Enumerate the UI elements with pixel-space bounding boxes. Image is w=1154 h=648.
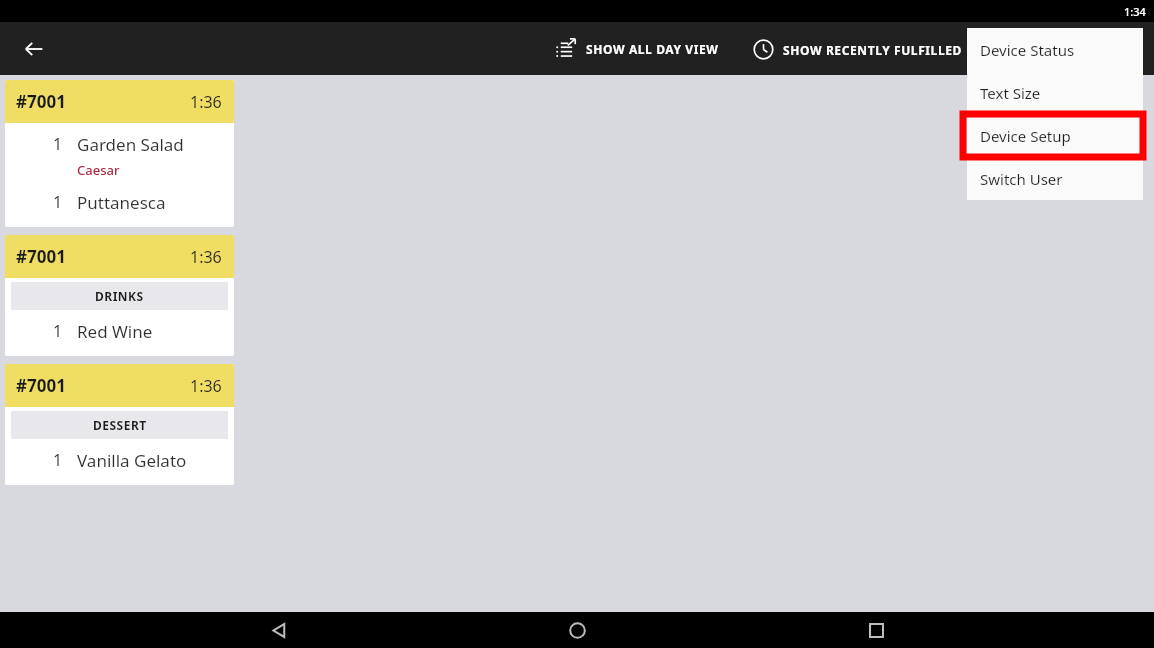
staticText: 1:34 <box>1124 4 1146 19</box>
button[interactable]: #7001 <box>5 364 234 485</box>
staticText: Garden Salad <box>77 133 184 156</box>
staticText: Device Status <box>980 40 1075 60</box>
staticText: Text Size <box>980 83 1041 103</box>
button[interactable]: Home <box>557 612 597 648</box>
staticText: #7001 <box>16 90 66 113</box>
staticText: 1:36 <box>190 91 222 113</box>
button[interactable]: #7001 <box>5 235 234 356</box>
button[interactable]: Device Setup <box>967 114 1143 157</box>
staticText: SHOW RECENTLY FULFILLED <box>783 42 962 58</box>
staticText: Device Setup <box>980 126 1071 146</box>
staticText: 1 <box>53 449 63 471</box>
staticText: DRINKS <box>95 288 144 304</box>
staticText: 1 <box>53 133 63 155</box>
staticText: Vanilla Gelato <box>77 449 187 472</box>
staticText: Puttanesca <box>77 191 166 214</box>
button[interactable]: Device Status <box>967 28 1143 71</box>
staticText: 1 <box>53 191 63 213</box>
button[interactable]: SHOW ALL DAY VIEW <box>549 32 725 66</box>
button[interactable]: SHOW RECENTLY FULFILLED <box>747 33 968 66</box>
staticText: SHOW ALL DAY VIEW <box>586 41 719 57</box>
staticText: Red Wine <box>77 320 153 343</box>
staticText: Switch User <box>980 169 1063 189</box>
staticText: Caesar <box>77 161 120 179</box>
button[interactable]: #7001 <box>5 80 234 227</box>
button[interactable]: Back <box>14 29 54 69</box>
button[interactable]: Text Size <box>967 71 1143 114</box>
staticText: 1:36 <box>190 246 222 268</box>
staticText: #7001 <box>16 374 66 397</box>
staticText: #7001 <box>16 245 66 268</box>
staticText: 1:36 <box>190 375 222 397</box>
button[interactable]: Recents <box>856 612 896 648</box>
staticText: 1 <box>53 320 63 342</box>
button[interactable]: Switch User <box>967 157 1143 200</box>
button[interactable]: Back <box>259 612 299 648</box>
staticText: DESSERT <box>93 417 147 433</box>
